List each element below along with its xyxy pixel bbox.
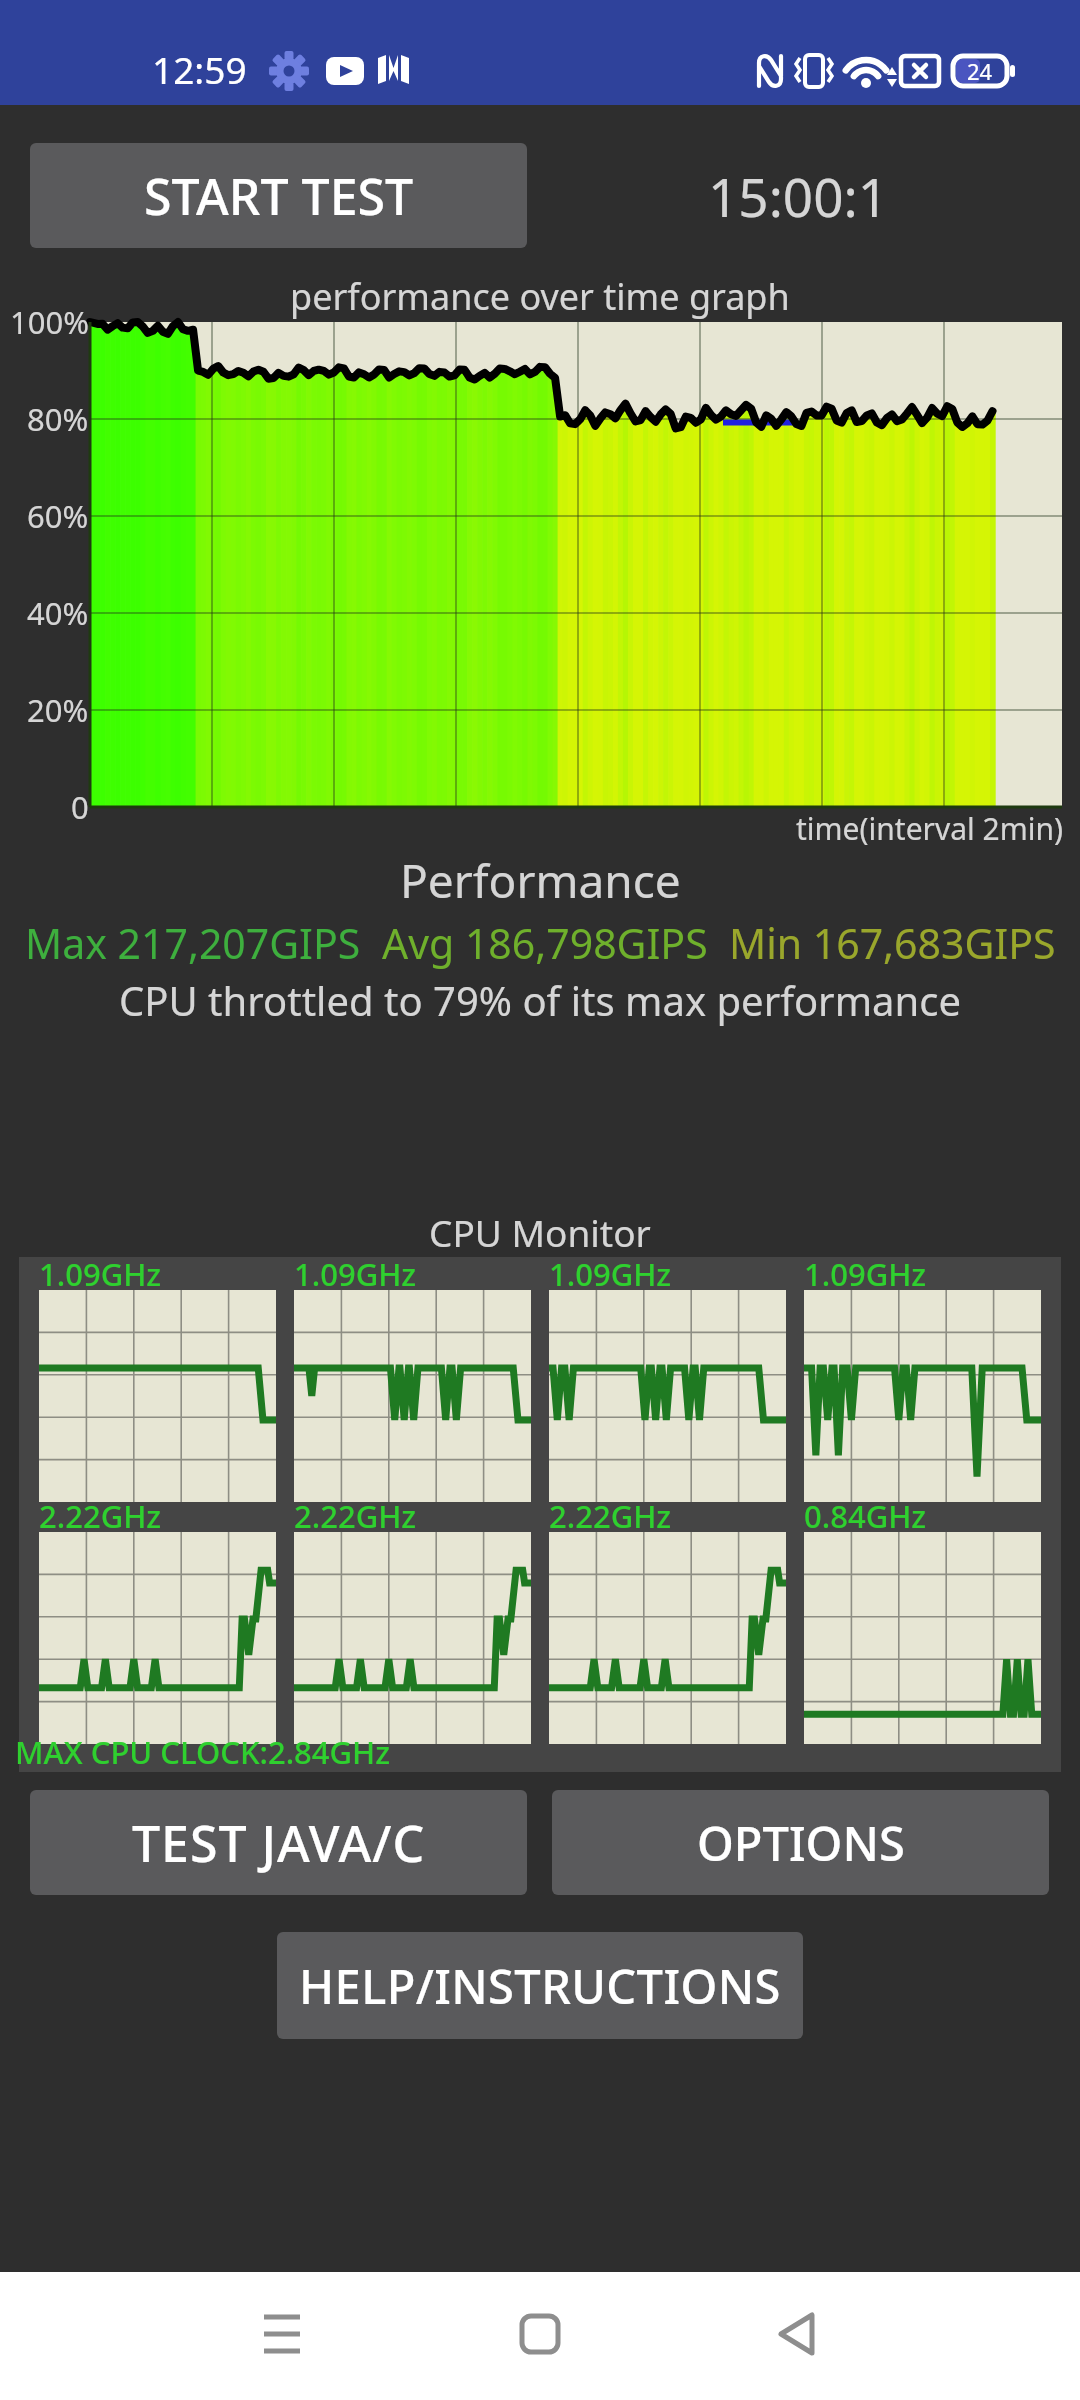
staticText: 1.09GHz [804, 1253, 927, 1295]
staticText: 12:59 [152, 44, 247, 94]
staticText: 1.09GHz [39, 1253, 162, 1295]
staticText: 0 [71, 786, 89, 828]
staticText: CPU Monitor [429, 1207, 651, 1257]
staticText: 0.84GHz [804, 1495, 927, 1537]
staticText: Max 217,207GIPS [25, 915, 382, 971]
button[interactable]: HELP/INSTRUCTIONS [277, 1932, 803, 2039]
staticText: 40% [27, 592, 89, 634]
staticText: 1.09GHz [294, 1253, 417, 1295]
staticText: START TEST [144, 162, 414, 230]
button[interactable]: Recent apps [222, 2282, 342, 2400]
staticText: Avg 186,798GIPS [382, 915, 729, 971]
staticText: MAX CPU CLOCK:2.84GHz [15, 1731, 391, 1773]
staticText: 2.22GHz [294, 1495, 417, 1537]
button[interactable]: TEST JAVA/C [30, 1790, 527, 1895]
button[interactable]: Home [480, 2282, 600, 2400]
button[interactable]: START TEST [30, 143, 527, 248]
staticText: 20% [27, 689, 89, 731]
staticText: 2.22GHz [39, 1495, 162, 1537]
staticText: Min 167,683GIPS [729, 915, 1056, 971]
staticText: CPU throttled to 79% of its max performa… [119, 973, 961, 1027]
staticText: 24 [967, 56, 993, 86]
staticText: OPTIONS [697, 1811, 905, 1875]
staticText: HELP/INSTRUCTIONS [299, 1954, 781, 2018]
button[interactable]: OPTIONS [552, 1790, 1049, 1895]
staticText: 60% [27, 495, 89, 537]
staticText: Performance [400, 849, 681, 912]
staticText: 15:00:1 [708, 160, 888, 232]
staticText: time(interval 2min) [796, 808, 1064, 849]
staticText: performance over time graph [290, 272, 790, 321]
staticText: 1.09GHz [549, 1253, 672, 1295]
staticText: 100% [10, 301, 89, 343]
staticText: TEST JAVA/C [132, 1809, 426, 1877]
staticText: 80% [27, 398, 89, 440]
staticText: 2.22GHz [549, 1495, 672, 1537]
button[interactable]: Back [738, 2282, 858, 2400]
